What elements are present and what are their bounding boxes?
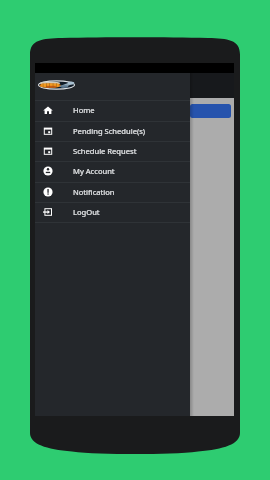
button[interactable]: Schedule: [35, 141, 190, 161]
staticText: Pending Schedule(s): [73, 126, 146, 136]
other: My Account: [43, 166, 53, 176]
other: LogOut: [43, 207, 53, 217]
button[interactable]: Schedule: [35, 121, 190, 141]
other: Schedule: [43, 126, 53, 136]
staticText: Home: [73, 105, 95, 115]
other: Schedule: [43, 146, 53, 156]
button[interactable]: My Account: [35, 161, 190, 181]
staticText: Schedule Request: [73, 146, 137, 156]
button[interactable]: [190, 104, 231, 118]
staticText: My Account: [73, 166, 115, 176]
button[interactable]: Home: [35, 100, 190, 120]
button[interactable]: Notification: [35, 182, 190, 202]
other: Notification: [43, 187, 53, 197]
other: App logo: [38, 80, 75, 90]
staticText: Notification: [73, 187, 115, 197]
button[interactable]: LogOut: [35, 202, 190, 222]
staticText: LogOut: [73, 207, 100, 217]
other: Home: [43, 105, 53, 115]
